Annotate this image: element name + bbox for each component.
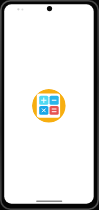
button[interactable]: Calculator app icon (32, 89, 66, 123)
